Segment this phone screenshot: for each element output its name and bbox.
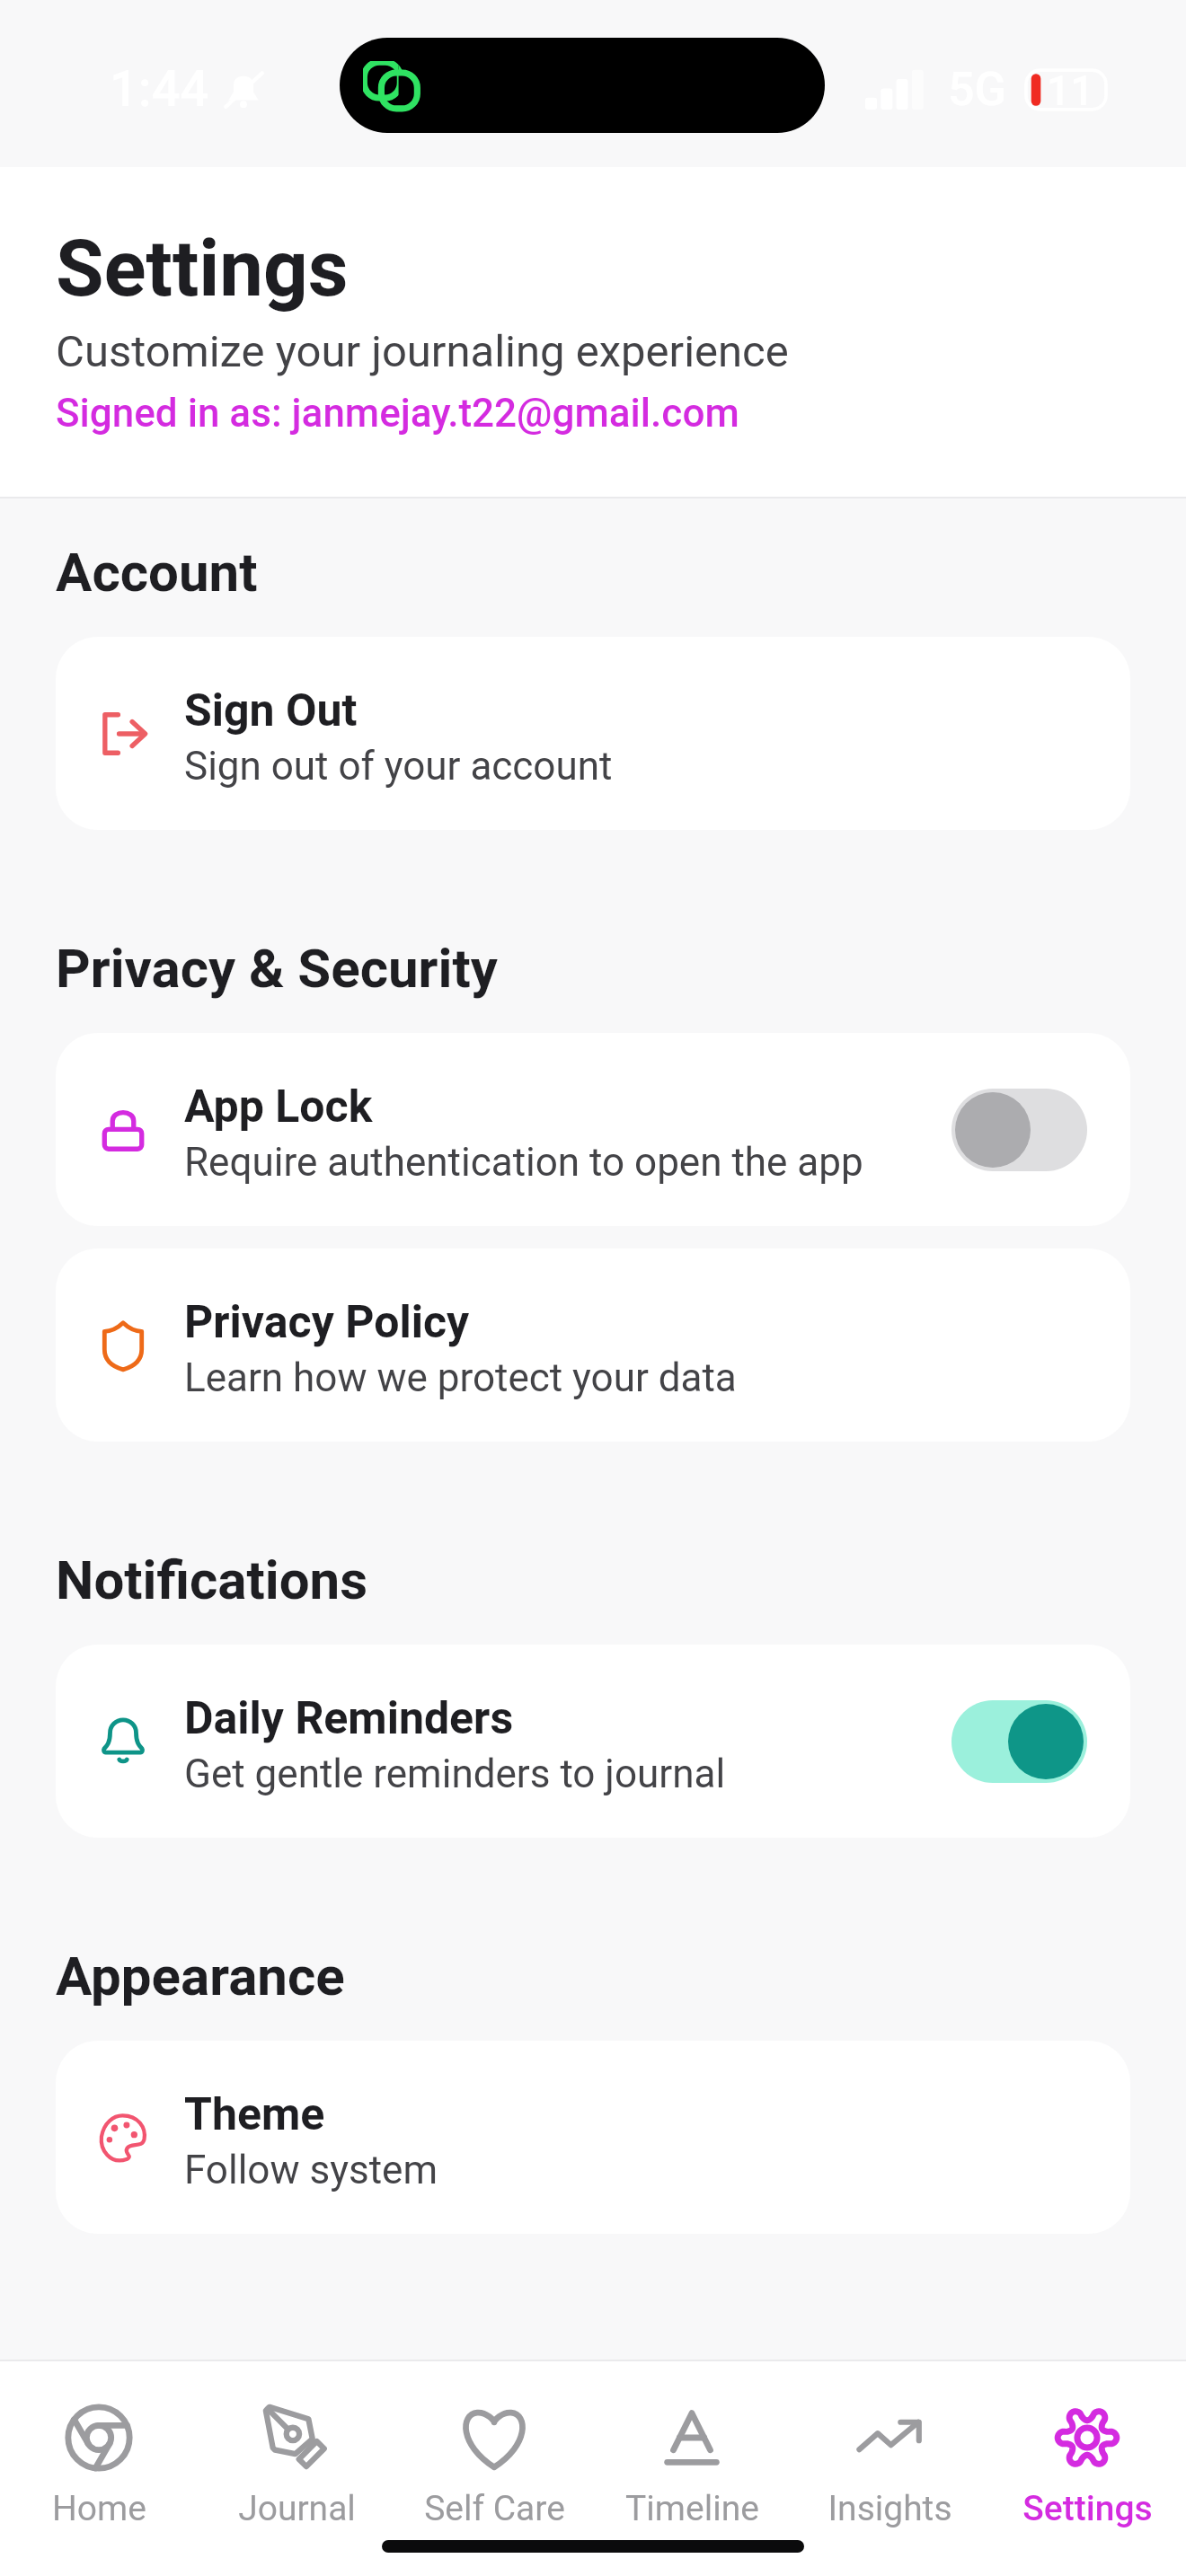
button[interactable]: Privacy Policy: [56, 1248, 1130, 1442]
button[interactable]: Theme: [56, 2041, 1130, 2234]
staticText: Customize your journaling experience: [56, 326, 789, 377]
button[interactable]: Switch on: [951, 1700, 1087, 1783]
staticText: Theme: [184, 2088, 325, 2141]
staticText: 5G: [948, 62, 1006, 117]
other: Self Care: [457, 2401, 531, 2475]
button[interactable]: Insights: [791, 2361, 988, 2576]
staticText: Account: [56, 541, 258, 604]
staticText: Privacy & Security: [56, 937, 498, 1000]
staticText: Get gentle reminders to journal: [184, 1751, 726, 1797]
staticText: Daily Reminders: [184, 1692, 514, 1745]
staticText: Appearance: [56, 1945, 345, 2007]
staticText: Settings: [1022, 2488, 1153, 2529]
staticText: Journal: [238, 2488, 356, 2529]
other: Timeline: [655, 2401, 729, 2475]
other: Journal: [260, 2401, 333, 2475]
staticText: Insights: [828, 2488, 952, 2529]
button[interactable]: App Lock: [56, 1033, 1130, 1226]
staticText: Sign Out: [184, 684, 358, 737]
staticText: App Lock: [184, 1081, 373, 1134]
button[interactable]: Switch off: [951, 1089, 1087, 1171]
staticText: Home: [52, 2488, 146, 2529]
staticText: 11: [1047, 66, 1094, 113]
button[interactable]: Self Care: [395, 2361, 593, 2576]
button[interactable]: Settings: [988, 2361, 1186, 2576]
other: Home: [62, 2401, 136, 2475]
staticText: Sign out of your account: [184, 743, 613, 790]
staticText: Signed in as: janmejay.t22@gmail.com: [56, 390, 739, 437]
other: Settings: [1050, 2401, 1124, 2475]
button[interactable]: Home: [0, 2361, 198, 2576]
staticText: Privacy Policy: [184, 1296, 470, 1349]
staticText: Require authentication to open the app: [184, 1139, 863, 1186]
button[interactable]: Journal: [198, 2361, 395, 2576]
other: Insights: [853, 2401, 926, 2475]
button[interactable]: Timeline: [593, 2361, 791, 2576]
staticText: Notifications: [56, 1548, 368, 1611]
staticText: Self Care: [424, 2488, 565, 2529]
button[interactable]: Sign Out: [56, 637, 1130, 830]
staticText: Settings: [56, 223, 349, 314]
staticText: Learn how we protect your data: [184, 1354, 737, 1401]
staticText: Timeline: [625, 2488, 759, 2529]
button[interactable]: Daily Reminders: [56, 1645, 1130, 1838]
staticText: Follow system: [184, 2147, 438, 2193]
